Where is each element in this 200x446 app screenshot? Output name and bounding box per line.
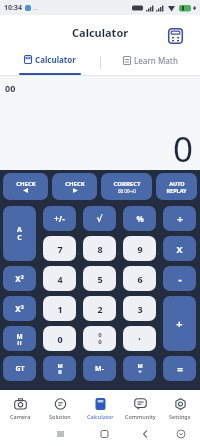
staticText: 2 — [97, 303, 103, 315]
button[interactable]: Solution — [40, 393, 80, 424]
staticText: 8 — [97, 243, 103, 255]
button[interactable]: % — [123, 206, 156, 231]
staticText: GT — [15, 364, 25, 374]
button[interactable]: Camera — [0, 393, 40, 424]
staticText: M — [16, 332, 23, 341]
staticText: 7 — [57, 243, 63, 255]
staticText: CORRECT — [113, 180, 141, 188]
staticText: 0 — [173, 125, 194, 173]
button[interactable]: 0 — [43, 326, 76, 351]
staticText: Community — [125, 413, 156, 420]
button[interactable]: CHECK — [52, 173, 97, 200]
staticText: + — [176, 316, 183, 331]
staticText: X³ — [15, 303, 24, 314]
button[interactable]: GT — [3, 356, 36, 381]
button[interactable]: 1 — [43, 296, 76, 321]
staticText: Solution — [49, 413, 71, 420]
button[interactable] — [168, 28, 183, 44]
staticText: Camera — [10, 413, 31, 420]
button[interactable]: 9 — [123, 236, 156, 261]
staticText: CHECK — [65, 180, 85, 188]
staticText: A C — [17, 225, 22, 242]
staticText: X — [176, 243, 183, 255]
staticText: 5 — [97, 273, 103, 285]
staticText: 00 — [5, 82, 16, 94]
staticText: 4 — [57, 273, 63, 285]
staticText: Calculator — [72, 25, 129, 40]
staticText: Learn Math — [134, 55, 178, 66]
staticText: X² — [15, 273, 24, 284]
staticText: - — [178, 272, 182, 286]
staticText: M + — [137, 362, 143, 375]
button[interactable]: 2 — [83, 296, 116, 321]
button[interactable]: 8 — [83, 236, 116, 261]
staticText: 0 0 — [98, 331, 102, 346]
staticText: CHECK — [16, 180, 36, 188]
staticText: ÷ — [177, 212, 183, 226]
staticText: 6 — [137, 273, 143, 285]
button[interactable]: · — [123, 326, 156, 351]
staticText: M- — [95, 364, 104, 374]
button[interactable]: 4 — [43, 266, 76, 291]
staticText: √ — [96, 214, 103, 224]
button[interactable]: Calculator — [0, 49, 100, 75]
staticText: 1 — [57, 303, 63, 315]
staticText: Calculator — [87, 413, 114, 420]
button[interactable]: ÷ — [163, 206, 196, 231]
button[interactable]: M R — [43, 356, 76, 381]
button[interactable]: X² — [3, 266, 36, 291]
staticText: = — [177, 362, 183, 376]
button[interactable]: AUTO — [156, 173, 197, 200]
button[interactable]: X³ — [3, 296, 36, 321]
button[interactable]: 5 — [83, 266, 116, 291]
button[interactable]: 0 0 — [83, 326, 116, 351]
button[interactable]: 7 — [43, 236, 76, 261]
staticText: Calculator — [35, 54, 76, 65]
staticText: AUTO — [169, 180, 185, 187]
staticText: +/- — [54, 213, 65, 224]
button[interactable]: = — [163, 356, 196, 381]
button[interactable]: Settings — [160, 393, 200, 424]
staticText: 3 — [137, 303, 143, 315]
button[interactable]: Community — [120, 393, 160, 424]
button[interactable]: X — [163, 236, 196, 261]
button[interactable]: + — [163, 296, 196, 351]
staticText: 0 — [57, 333, 63, 345]
button[interactable]: M — [3, 326, 36, 351]
button[interactable]: 3 — [123, 296, 156, 321]
staticText: M R — [57, 362, 63, 375]
staticText: … — [33, 4, 38, 12]
staticText: REPLAY — [166, 187, 187, 194]
staticText: % — [136, 213, 144, 224]
button[interactable]: Calculator — [80, 393, 120, 424]
button[interactable]: M + — [123, 356, 156, 381]
button[interactable]: M- — [83, 356, 116, 381]
button[interactable]: +/- — [43, 206, 76, 231]
button[interactable]: - — [163, 266, 196, 291]
button[interactable]: Learn Math — [100, 49, 200, 75]
staticText: 9 — [137, 243, 143, 255]
staticText: 10:34 — [4, 3, 22, 13]
button[interactable]: 6 — [123, 266, 156, 291]
button[interactable]: A C — [3, 206, 36, 261]
button[interactable]: CHECK — [3, 173, 48, 200]
staticText: Settings — [169, 413, 191, 420]
staticText: · — [138, 332, 141, 346]
button[interactable]: √ — [83, 206, 116, 231]
staticText: ⌧ 00→0 — [118, 188, 136, 194]
button[interactable]: CORRECT — [101, 173, 152, 200]
